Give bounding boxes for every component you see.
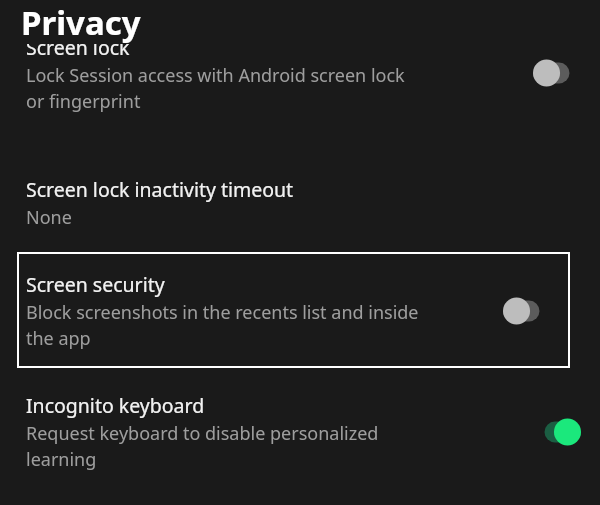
button[interactable]: Screen lock inactivity timeout [0, 176, 600, 230]
button[interactable]: Incognito keyboard toggle, on [526, 412, 588, 452]
staticText: Screen security [26, 271, 165, 298]
staticText: Screen lock inactivity timeout [26, 176, 294, 203]
staticText: Incognito keyboard [26, 392, 205, 419]
button[interactable]: Incognito keyboard [0, 392, 600, 471]
button[interactable]: Screen lock [0, 44, 600, 118]
staticText: Screen lock [26, 44, 130, 61]
button[interactable]: Screen security [17, 252, 570, 368]
staticText: Lock Session access with Android screen … [26, 63, 405, 113]
button[interactable]: Screen lock toggle, off [526, 53, 588, 93]
staticText: Privacy [21, 0, 141, 44]
staticText: Request keyboard to disable personalized… [26, 421, 379, 471]
button[interactable]: Screen security toggle, off [496, 291, 558, 331]
staticText: None [26, 205, 72, 230]
staticText: Block screenshots in the recents list an… [26, 300, 419, 350]
button[interactable]: Screen security [17, 271, 570, 350]
